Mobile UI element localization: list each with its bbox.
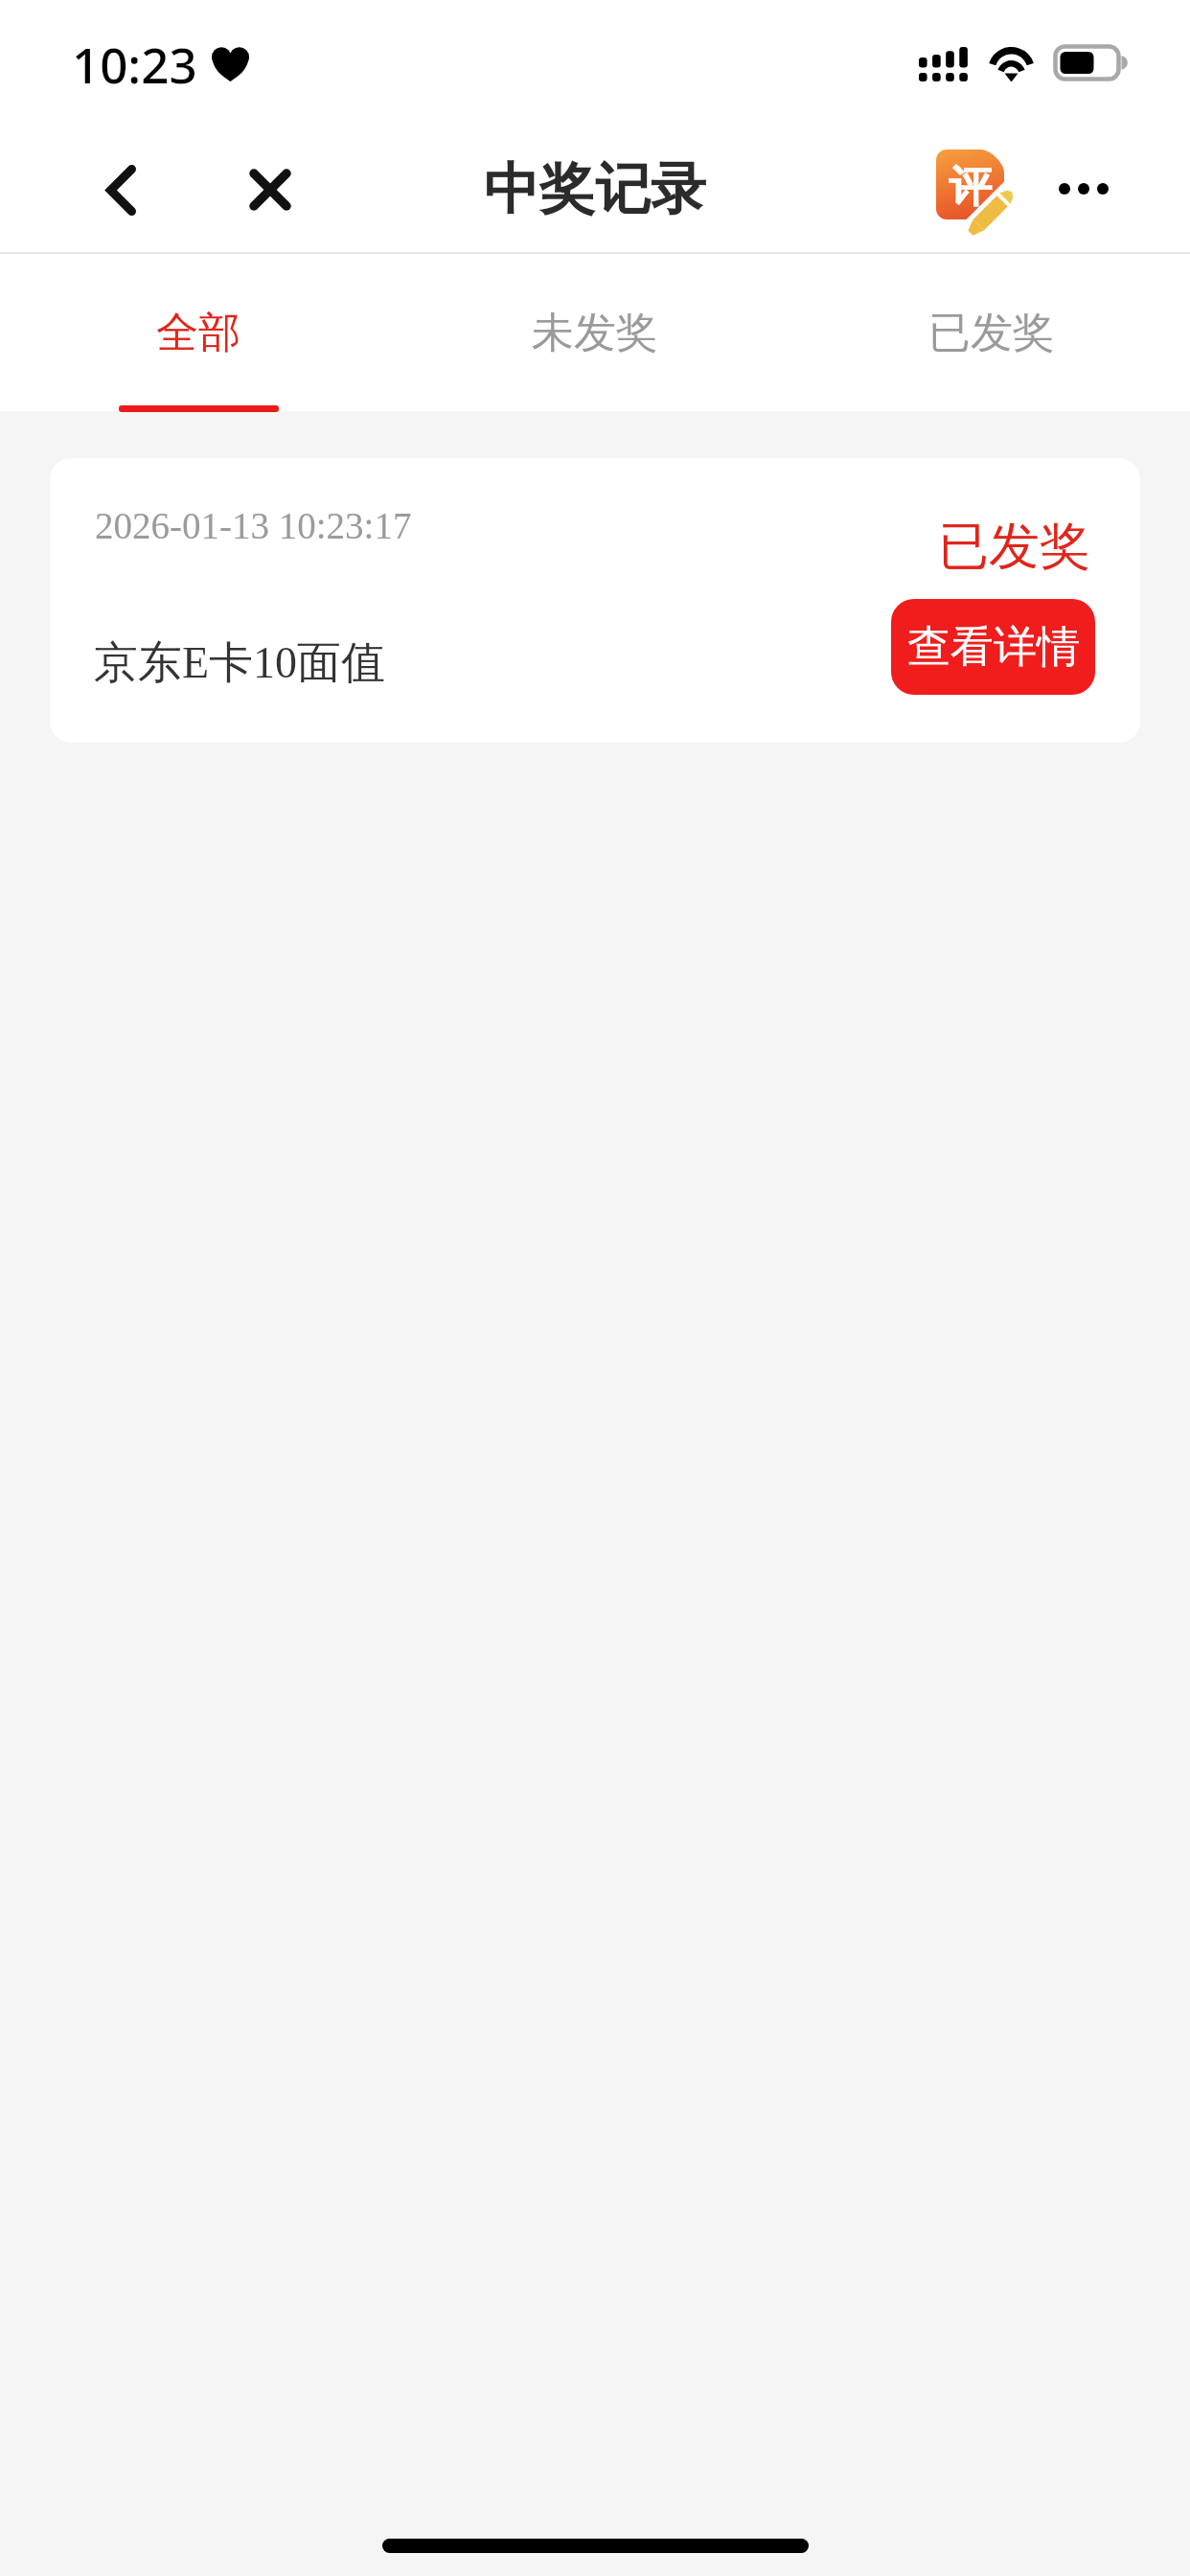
button[interactable]: Close — [220, 140, 320, 240]
button[interactable]: Back — [71, 140, 171, 240]
staticText: 京东E卡10面值 — [94, 635, 386, 691]
button[interactable]: More options — [1034, 139, 1133, 239]
button[interactable]: 未发奖 — [397, 254, 793, 411]
staticText: 2026-01-13 10:23:17 — [95, 505, 412, 546]
staticText: 评 — [949, 160, 992, 215]
staticText: 未发奖 — [532, 307, 658, 359]
staticText: 已发奖 — [928, 307, 1055, 359]
staticText: 全部 — [156, 307, 240, 359]
button[interactable]: 2026-01-13 10:23:17 — [50, 458, 1140, 743]
staticText: 10:23 — [72, 31, 197, 97]
button[interactable]: Review — [920, 139, 1027, 246]
staticText: 查看详情 — [907, 620, 1080, 675]
button[interactable]: 已发奖 — [793, 254, 1190, 411]
staticText: 已发奖 — [938, 515, 1090, 579]
button[interactable]: 查看详情 — [891, 599, 1095, 695]
staticText: 中奖记录 — [0, 154, 1190, 224]
button[interactable]: 全部 — [0, 254, 397, 411]
